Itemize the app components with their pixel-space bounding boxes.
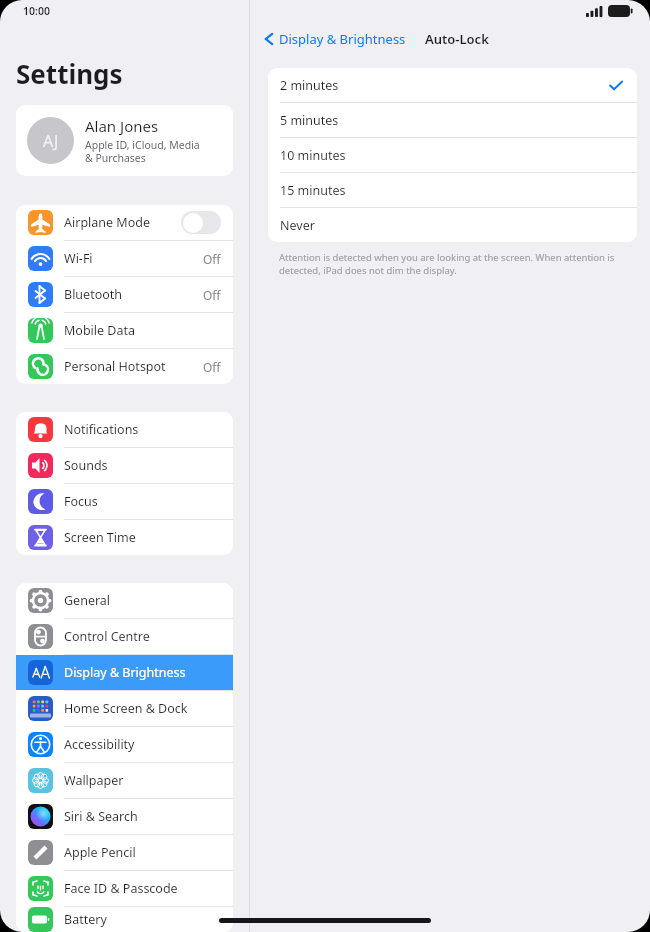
staticText: Accessibility [64, 736, 135, 753]
staticText: Settings [16, 56, 123, 91]
staticText: Apple ID, iCloud, Media & Purchases [85, 138, 200, 165]
staticText: AJ [43, 130, 59, 152]
staticText: Personal Hotspot [64, 358, 166, 375]
button[interactable]: 2 minutes [268, 68, 637, 102]
staticText: Wallpaper [64, 772, 124, 789]
staticText: 2 minutes [280, 77, 339, 94]
button[interactable]: Back [261, 26, 409, 52]
button[interactable]: Accessibility [16, 727, 233, 762]
staticText: Bluetooth [64, 286, 123, 303]
staticText: Attention is detected when you are looki… [279, 251, 635, 277]
button[interactable]: Personal Hotspot [16, 349, 233, 384]
staticText: Home Screen & Dock [64, 700, 188, 717]
staticText: Apple Pencil [64, 844, 136, 861]
staticText: Alan Jones [85, 116, 159, 136]
button[interactable]: Home Screen & Dock [16, 691, 233, 726]
staticText: Auto-Lock [425, 30, 489, 48]
staticText: Off [203, 287, 221, 303]
staticText: Screen Time [64, 529, 136, 546]
staticText: Display & Brightness [64, 664, 186, 681]
button[interactable]: 10 minutes [268, 138, 637, 172]
other: Back [264, 31, 274, 47]
button[interactable]: Mobile Data [16, 313, 233, 348]
button[interactable]: Apple Pencil [16, 835, 233, 870]
button[interactable]: Airplane Mode [16, 205, 233, 240]
button[interactable]: Airplane Mode toggle [181, 211, 221, 234]
staticText: General [64, 592, 111, 609]
button[interactable]: Focus [16, 484, 233, 519]
button[interactable]: AJ [16, 105, 233, 176]
staticText: Sounds [64, 457, 108, 474]
staticText: 10 minutes [280, 147, 346, 164]
staticText: Wi-Fi [64, 250, 93, 267]
staticText: Mobile Data [64, 322, 136, 339]
button[interactable]: Battery [16, 907, 233, 932]
staticText: Airplane Mode [64, 214, 150, 231]
button[interactable]: Screen Time [16, 520, 233, 555]
button[interactable]: General [16, 583, 233, 618]
button[interactable]: Control Centre [16, 619, 233, 654]
staticText: Control Centre [64, 628, 150, 645]
button[interactable]: Face ID & Passcode [16, 871, 233, 906]
staticText: Off [203, 251, 221, 267]
staticText: Off [203, 359, 221, 375]
button[interactable]: Sounds [16, 448, 233, 483]
button[interactable]: Bluetooth [16, 277, 233, 312]
staticText: Siri & Search [64, 808, 138, 825]
staticText: Battery [64, 911, 107, 928]
staticText: Never [280, 217, 315, 234]
button[interactable]: 5 minutes [268, 103, 637, 137]
staticText: Face ID & Passcode [64, 880, 178, 897]
button[interactable]: Wallpaper [16, 763, 233, 798]
button[interactable]: Display & Brightness [16, 655, 233, 690]
staticText: Display & Brightness [279, 30, 406, 48]
button[interactable]: 15 minutes [268, 173, 637, 207]
staticText: Focus [64, 493, 98, 510]
staticText: 15 minutes [280, 182, 346, 199]
button[interactable]: Siri & Search [16, 799, 233, 834]
staticText: Notifications [64, 421, 139, 438]
button[interactable]: Never [268, 208, 637, 242]
button[interactable]: Wi-Fi [16, 241, 233, 276]
staticText: 5 minutes [280, 112, 339, 129]
staticText: 10:00 [23, 4, 50, 18]
button[interactable]: Notifications [16, 412, 233, 447]
